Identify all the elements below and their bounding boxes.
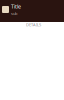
staticText: sub — [11, 11, 17, 16]
staticText: Title — [11, 3, 21, 10]
staticText: DETAILS — [26, 22, 41, 27]
